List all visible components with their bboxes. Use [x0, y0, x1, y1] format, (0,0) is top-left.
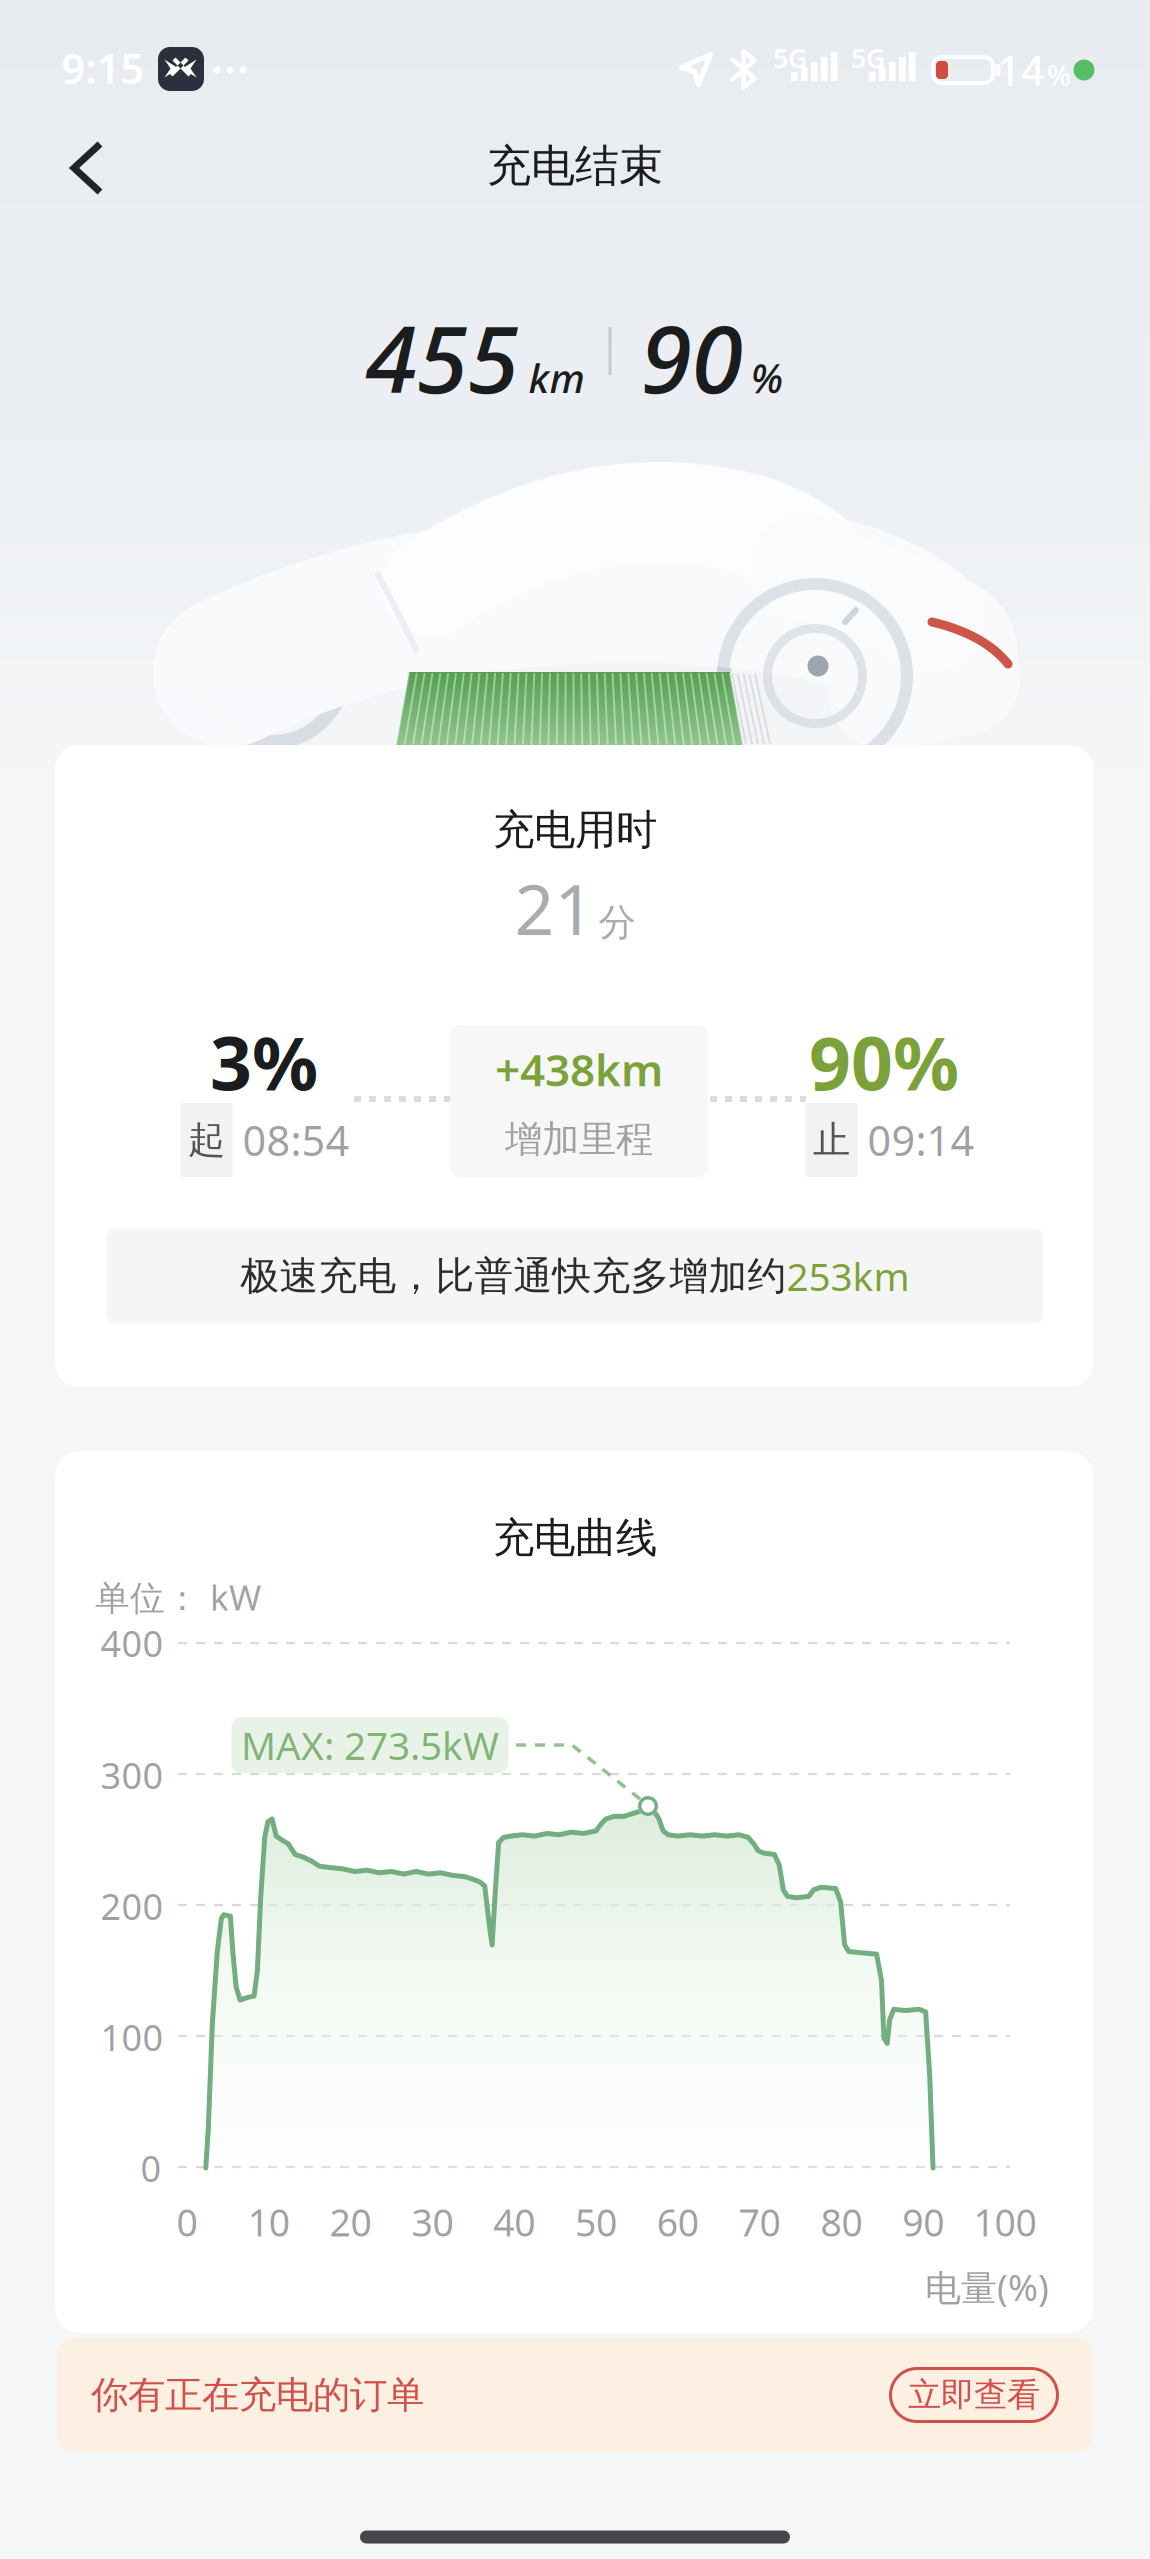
- staticText: 455: [365, 295, 518, 419]
- staticText: 200: [100, 1882, 163, 1930]
- button[interactable]: Back: [56, 138, 116, 198]
- staticText: 21: [514, 862, 594, 954]
- staticText: 09:14: [867, 1113, 974, 1167]
- staticText: 5G: [851, 40, 885, 76]
- staticText: 单位： kW: [95, 1574, 261, 1620]
- staticText: 3%: [210, 1013, 318, 1111]
- staticText: 40: [493, 2197, 535, 2247]
- staticText: 充电用时: [493, 805, 657, 855]
- staticText: 增加里程: [505, 1116, 653, 1162]
- staticText: 80: [820, 2197, 862, 2247]
- staticText: 止: [813, 1117, 850, 1163]
- staticText: 你有正在充电的订单: [91, 2372, 424, 2418]
- staticText: 100: [100, 2013, 163, 2061]
- button[interactable]: 你有正在充电的订单: [57, 2338, 1093, 2452]
- staticText: 电量(%): [925, 2263, 1049, 2311]
- staticText: 10: [248, 2197, 290, 2247]
- staticText: 0: [176, 2197, 197, 2247]
- staticText: 50: [575, 2197, 617, 2247]
- staticText: %: [1047, 57, 1071, 94]
- staticText: 300: [100, 1751, 163, 1799]
- staticText: +438km: [495, 1040, 663, 1098]
- staticText: km: [528, 351, 584, 404]
- staticText: 起: [188, 1117, 225, 1163]
- staticText: 60: [657, 2197, 699, 2247]
- staticText: 100: [973, 2197, 1036, 2247]
- staticText: 30: [411, 2197, 453, 2247]
- staticText: 充电曲线: [493, 1513, 657, 1563]
- staticText: 极速充电，比普通快充多增加约: [240, 1252, 786, 1300]
- staticText: %: [750, 351, 783, 404]
- staticText: 5G: [773, 40, 807, 76]
- staticText: 充电结束: [487, 139, 663, 193]
- staticText: 90%: [809, 1013, 959, 1111]
- staticText: 253km: [786, 1250, 909, 1302]
- staticText: MAX: 273.5kW: [241, 1719, 499, 1771]
- staticText: 08:54: [242, 1113, 349, 1167]
- staticText: 90: [902, 2197, 944, 2247]
- staticText: 90: [640, 295, 742, 419]
- staticText: 分: [598, 899, 635, 945]
- staticText: 14: [997, 43, 1045, 97]
- staticText: 立即查看: [908, 2374, 1040, 2415]
- staticText: 400: [100, 1619, 163, 1667]
- staticText: 9:15: [61, 41, 144, 95]
- staticText: 70: [739, 2197, 781, 2247]
- staticText: 0: [140, 2144, 161, 2192]
- staticText: 20: [330, 2197, 372, 2247]
